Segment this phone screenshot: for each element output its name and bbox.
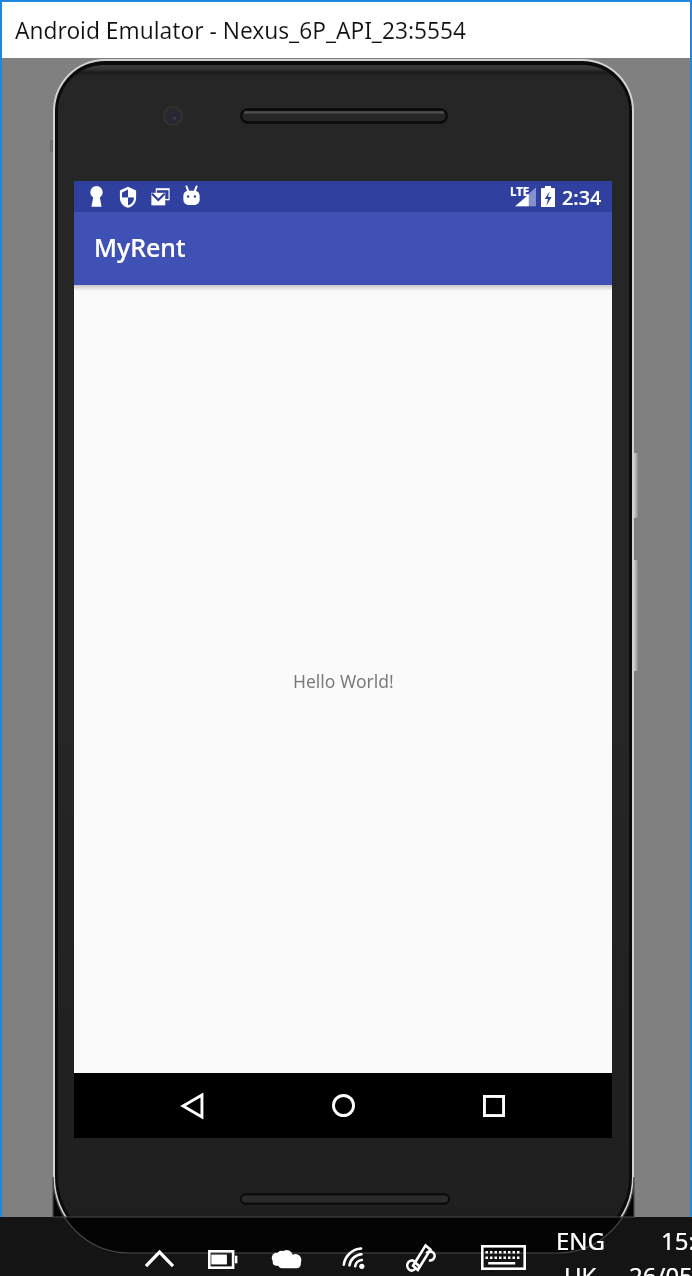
staticText: 26/05 xyxy=(629,1259,692,1276)
staticText: 15: xyxy=(661,1224,692,1257)
staticText: Android Emulator - Nexus_6P_API_23:5554 xyxy=(15,15,466,46)
button[interactable]: OneDrive xyxy=(265,1236,311,1276)
button[interactable]: Pen xyxy=(399,1235,445,1276)
button[interactable]: Battery xyxy=(200,1236,246,1276)
staticText: 2:34 xyxy=(562,184,602,211)
button[interactable]: MyRent xyxy=(74,212,612,285)
staticText: Hello World! xyxy=(293,669,394,693)
staticText: UK xyxy=(564,1259,597,1276)
button[interactable]: Home xyxy=(309,1073,377,1138)
staticText: LTE xyxy=(510,184,530,200)
button[interactable]: Show hidden icons xyxy=(136,1235,182,1276)
staticText: MyRent xyxy=(94,230,186,264)
staticText: ENG xyxy=(556,1224,606,1257)
button[interactable]: Recents xyxy=(460,1073,528,1138)
button[interactable]: Back xyxy=(158,1073,226,1138)
button[interactable]: Keyboard xyxy=(480,1234,526,1276)
button[interactable]: Network xyxy=(330,1235,376,1276)
